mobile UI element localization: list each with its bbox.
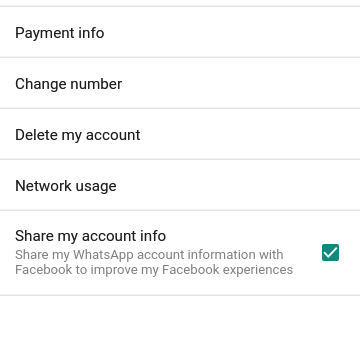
staticText: Share my account info: [15, 227, 167, 245]
staticText: Payment info: [15, 24, 105, 42]
button[interactable]: Change number: [0, 58, 360, 108]
button[interactable]: Delete my account: [0, 109, 360, 159]
button[interactable]: Share my account info: [0, 211, 360, 295]
staticText: Network usage: [15, 177, 117, 195]
staticText: Share my WhatsApp account information wi…: [15, 247, 294, 277]
staticText: Share my account info: [15, 227, 167, 245]
button[interactable]: Network usage: [0, 160, 360, 210]
staticText: Change number: [15, 75, 123, 93]
staticText: Delete my account: [15, 126, 141, 144]
staticText: Change number: [15, 75, 123, 93]
staticText: Delete my account: [15, 126, 141, 144]
button[interactable]: Payment info: [0, 7, 360, 57]
button[interactable]: Share my account info, checked: [322, 244, 339, 261]
staticText: Network usage: [15, 177, 117, 195]
staticText: Payment info: [15, 24, 105, 42]
